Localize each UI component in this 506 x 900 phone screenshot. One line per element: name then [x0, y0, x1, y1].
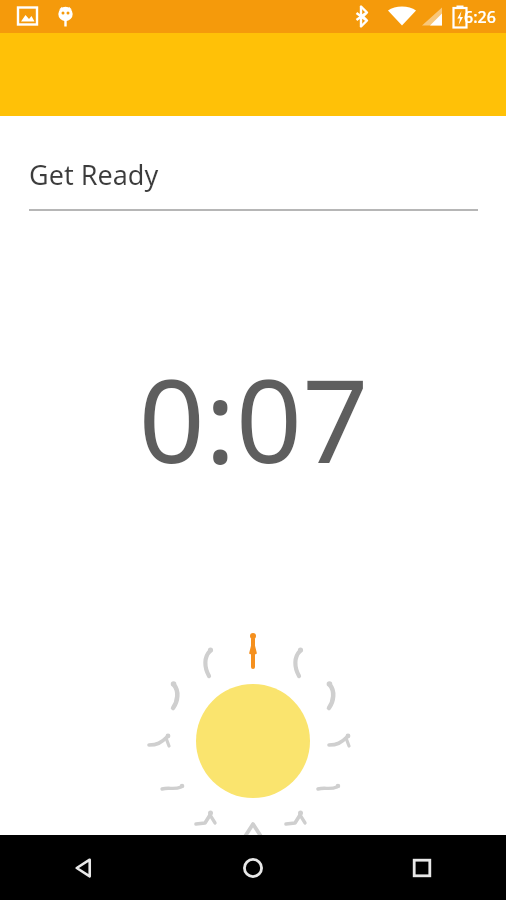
button[interactable]: Home	[168, 835, 337, 900]
staticText: 0:07	[138, 339, 369, 497]
staticText: Get Ready	[29, 156, 159, 193]
button[interactable]: Sun salutation progress	[148, 647, 358, 835]
staticText: 6:26	[464, 6, 496, 28]
button[interactable]: Get Ready	[29, 156, 478, 193]
button[interactable]: Back	[0, 835, 168, 900]
button[interactable]: Recent apps	[337, 835, 506, 900]
